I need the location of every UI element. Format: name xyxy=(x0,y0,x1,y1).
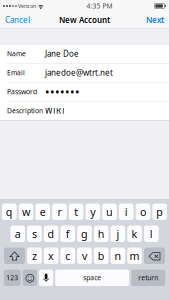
staticText: ••••••• xyxy=(45,84,80,100)
staticText: r xyxy=(57,205,61,219)
staticText: m xyxy=(130,249,140,263)
staticText: q xyxy=(6,205,13,219)
staticText: janedoe@wtrt.net xyxy=(45,67,113,78)
staticText: 123 xyxy=(6,273,18,282)
button[interactable]: o xyxy=(136,203,150,220)
staticText: Email xyxy=(7,68,25,77)
staticText: u xyxy=(106,205,113,219)
button[interactable]: z xyxy=(27,247,42,264)
button[interactable]: d xyxy=(44,225,58,242)
button[interactable]: Email xyxy=(0,63,169,82)
button[interactable]: t xyxy=(69,203,83,220)
staticText: Jane Doe xyxy=(45,48,79,59)
button[interactable]: space xyxy=(55,269,129,286)
staticText: s xyxy=(32,227,37,241)
button[interactable]: k xyxy=(127,225,142,242)
staticText: x xyxy=(48,249,54,263)
staticText: Next xyxy=(146,15,164,25)
button[interactable]: l xyxy=(144,225,159,242)
button[interactable]: c xyxy=(60,247,75,264)
staticText: d xyxy=(48,227,55,241)
staticText: return xyxy=(138,273,158,282)
button[interactable]: f xyxy=(60,225,75,242)
button[interactable]: x xyxy=(44,247,58,264)
staticText: Cancel xyxy=(5,15,30,25)
staticText: Name xyxy=(7,49,26,58)
staticText: Description xyxy=(7,106,43,115)
staticText: WTRT xyxy=(45,105,65,116)
staticText: f xyxy=(66,227,70,241)
staticText: b xyxy=(98,249,105,263)
button[interactable]: b xyxy=(94,247,108,264)
staticText: New Account xyxy=(59,15,110,25)
button[interactable]: Description xyxy=(0,101,169,120)
button[interactable]: 123 xyxy=(4,269,21,286)
button[interactable]: q xyxy=(2,203,17,220)
button[interactable]: r xyxy=(52,203,67,220)
button[interactable]: e xyxy=(35,203,50,220)
button[interactable]: p xyxy=(152,203,167,220)
button[interactable]: v xyxy=(77,247,92,264)
button[interactable]: Password xyxy=(0,82,169,101)
staticText: v xyxy=(82,249,87,263)
staticText: l xyxy=(150,227,153,241)
button[interactable]: j xyxy=(111,225,125,242)
staticText: o xyxy=(140,205,146,219)
button[interactable]: Emoji xyxy=(23,269,37,286)
staticText: y xyxy=(90,205,95,219)
staticText: n xyxy=(114,249,121,263)
staticText: g xyxy=(81,227,88,241)
staticText: p xyxy=(156,205,163,219)
button[interactable]: Delete xyxy=(144,247,165,264)
staticText: space xyxy=(83,273,101,282)
button[interactable]: return xyxy=(131,269,165,286)
button[interactable]: Dictation xyxy=(39,269,53,286)
staticText: j xyxy=(116,227,119,241)
button[interactable]: w xyxy=(19,203,33,220)
staticText: Password xyxy=(7,87,37,96)
button[interactable]: h xyxy=(94,225,108,242)
button[interactable]: s xyxy=(27,225,42,242)
staticText: h xyxy=(98,227,105,241)
button[interactable]: i xyxy=(119,203,134,220)
staticText: Verizon xyxy=(17,2,36,10)
staticText: i xyxy=(125,205,128,219)
button[interactable]: u xyxy=(102,203,117,220)
staticText: z xyxy=(32,249,37,263)
staticText: k xyxy=(132,227,138,241)
button[interactable]: m xyxy=(127,247,142,264)
staticText: t xyxy=(74,205,78,219)
button[interactable]: g xyxy=(77,225,92,242)
staticText: 4:35 PM xyxy=(86,2,112,10)
staticText: c xyxy=(65,249,70,263)
button[interactable]: Cancel xyxy=(0,12,35,28)
staticText: a xyxy=(15,227,21,241)
staticText: e xyxy=(40,205,46,219)
button[interactable]: Next xyxy=(141,12,169,28)
staticText: w xyxy=(22,205,30,219)
button[interactable]: Shift xyxy=(4,247,25,264)
button[interactable]: y xyxy=(86,203,100,220)
button[interactable]: Name xyxy=(0,44,169,63)
button[interactable]: a xyxy=(10,225,25,242)
button[interactable]: n xyxy=(111,247,125,264)
